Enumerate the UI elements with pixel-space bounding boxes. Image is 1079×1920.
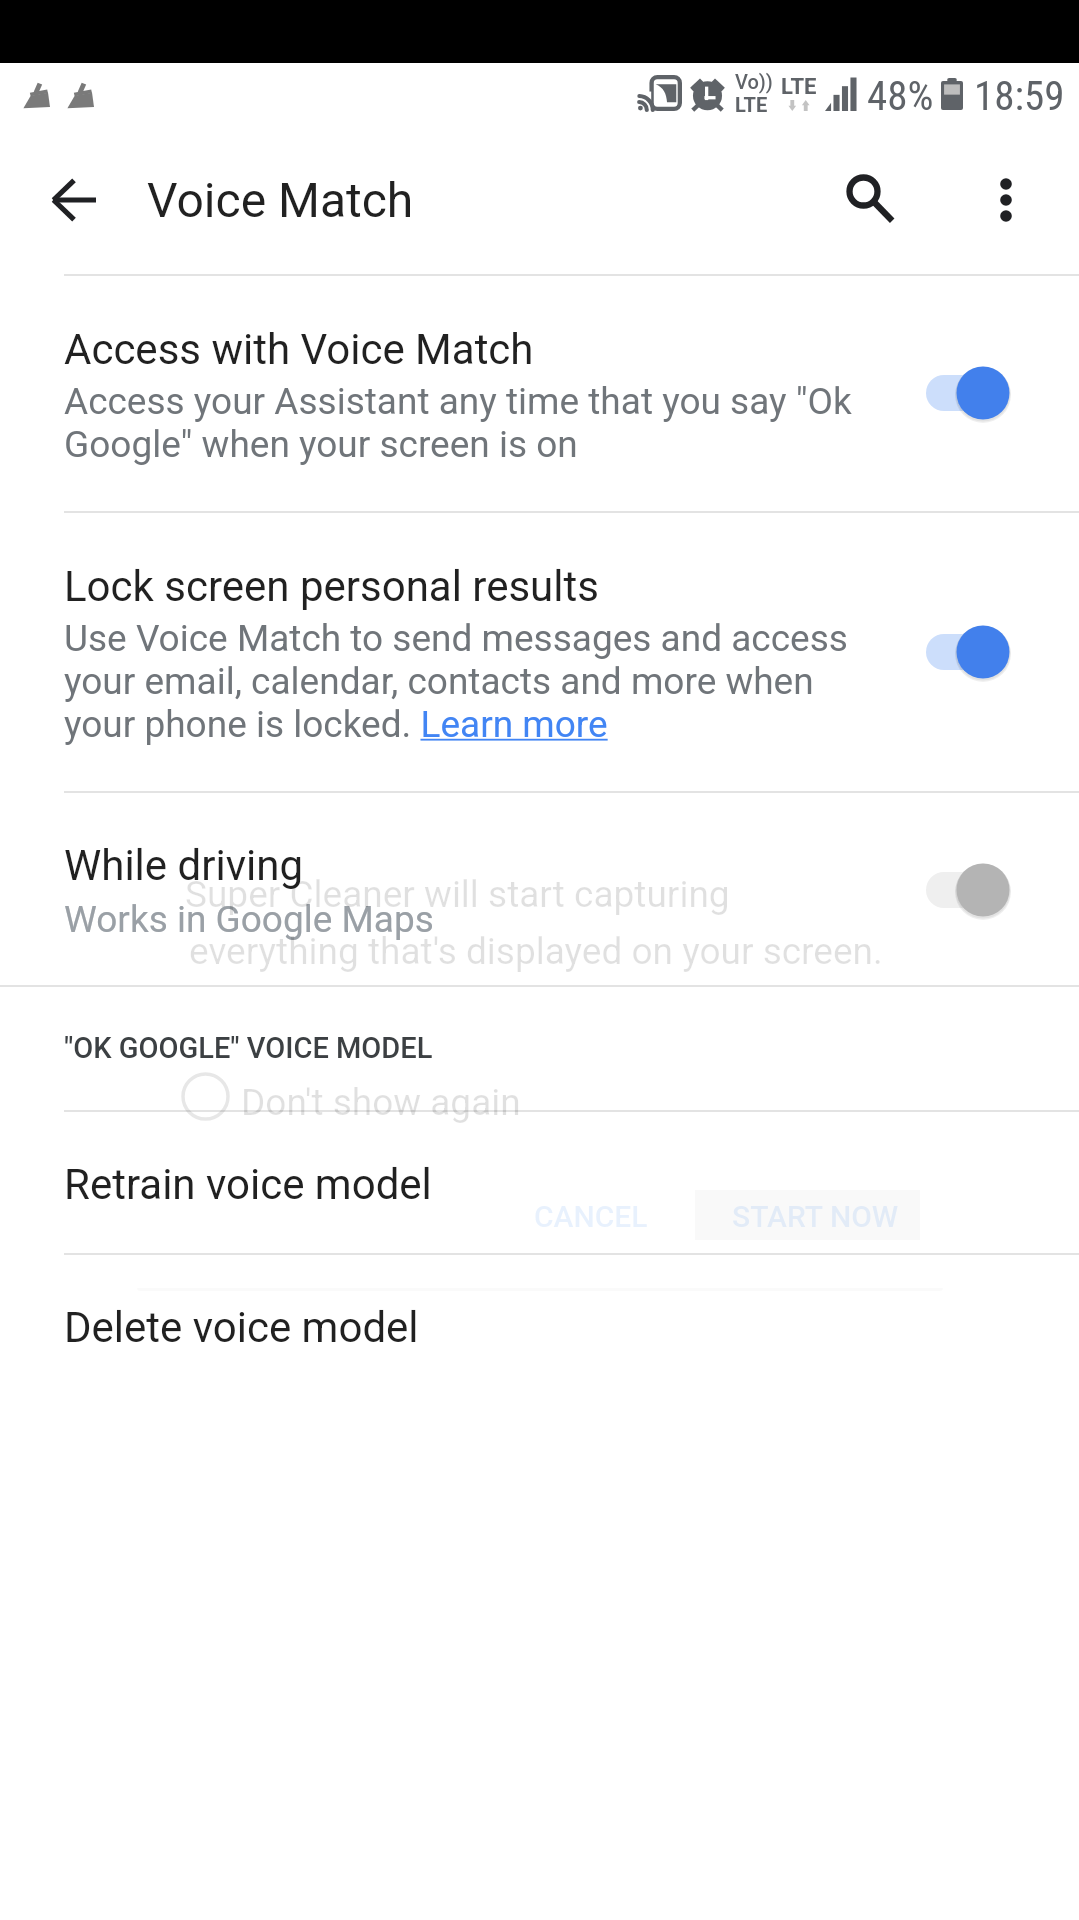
staticText: "OK GOOGLE" VOICE MODEL — [64, 1031, 433, 1065]
button[interactable]: Navigate up — [26, 152, 122, 248]
staticText: Lock screen personal results — [64, 562, 599, 611]
button[interactable] — [0, 1255, 1079, 1396]
staticText: your email, calendar, contacts and more … — [64, 660, 814, 703]
staticText: Works in Google Maps — [64, 898, 434, 941]
button[interactable]: Access with Voice Match — [912, 355, 1022, 431]
button[interactable]: While driving — [912, 852, 1022, 928]
staticText: LTE — [735, 93, 768, 116]
staticText: 48% — [867, 72, 934, 120]
staticText: Access your Assistant any time that you … — [64, 380, 852, 423]
button[interactable]: Search — [821, 149, 917, 245]
staticText: your phone is locked. Learn more — [64, 703, 608, 746]
staticText: Delete voice model — [64, 1303, 419, 1352]
staticText: Access with Voice Match — [64, 325, 534, 374]
staticText: Voice Match — [147, 172, 414, 228]
button[interactable] — [0, 276, 1079, 509]
staticText: CANCEL — [534, 1199, 648, 1234]
staticText: everything that's displayed on your scre… — [189, 930, 883, 973]
button[interactable] — [0, 1112, 1079, 1253]
staticText: START NOW — [732, 1199, 899, 1234]
staticText: Google" when your screen is on — [64, 423, 578, 466]
button[interactable] — [0, 513, 1079, 789]
button[interactable]: More options — [958, 152, 1054, 248]
staticText: Vo)) — [735, 70, 773, 93]
staticText: LTE — [781, 74, 817, 100]
staticText: 18:59 — [974, 72, 1065, 120]
button[interactable] — [0, 793, 1079, 983]
staticText: Retrain voice model — [64, 1160, 432, 1209]
staticText: Super Cleaner will start capturing — [185, 873, 730, 916]
staticText: While driving — [64, 841, 303, 890]
staticText: Don't show again — [241, 1081, 521, 1124]
staticText: Use Voice Match to send messages and acc… — [64, 617, 848, 660]
button[interactable]: Lock screen personal results — [912, 614, 1022, 690]
